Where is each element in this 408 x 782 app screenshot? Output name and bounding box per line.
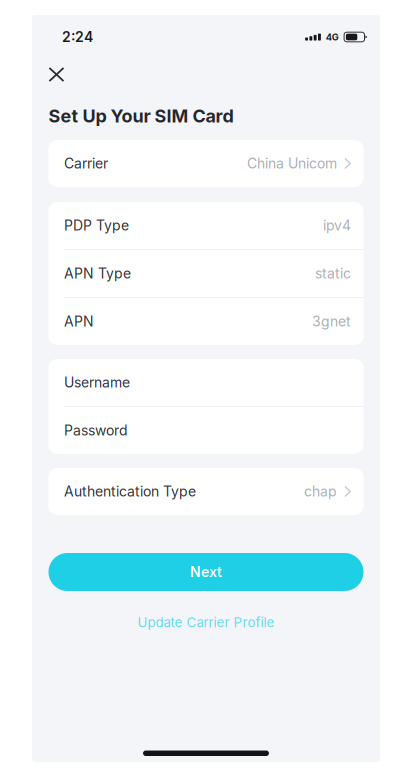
staticText: Carrier — [64, 155, 108, 172]
button[interactable]: Next — [48, 553, 363, 591]
button[interactable]: Close — [48, 60, 82, 89]
staticText: ipv4 — [323, 217, 351, 234]
staticText: Update Carrier Profile — [137, 614, 274, 630]
button[interactable]: Username — [48, 359, 363, 406]
staticText: chap — [304, 483, 337, 500]
staticText: Authentication Type — [64, 483, 196, 500]
staticText: APN Type — [64, 265, 131, 282]
button[interactable]: Password — [48, 407, 363, 454]
staticText: China Unicom — [247, 155, 337, 172]
button[interactable]: Update Carrier Profile — [48, 610, 363, 635]
staticText: 4G — [326, 31, 339, 43]
staticText: PDP Type — [64, 217, 129, 234]
staticText: Set Up Your SIM Card — [48, 105, 233, 127]
staticText: Username — [64, 374, 130, 391]
button[interactable]: PDP Type — [48, 202, 363, 249]
staticText: 2:24 — [62, 28, 93, 45]
staticText: Next — [190, 563, 222, 580]
button[interactable]: Carrier — [48, 140, 363, 187]
staticText: APN — [64, 313, 94, 330]
staticText: static — [315, 265, 351, 282]
staticText: Password — [64, 422, 128, 439]
button[interactable]: APN — [48, 298, 363, 345]
staticText: 3gnet — [312, 313, 351, 330]
button[interactable]: APN Type — [48, 250, 363, 297]
button[interactable]: Authentication Type — [48, 468, 363, 515]
